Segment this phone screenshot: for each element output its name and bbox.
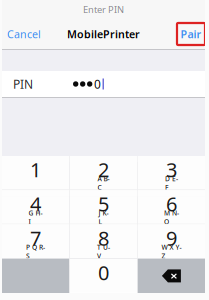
staticText: MNO [164,208,179,226]
button[interactable]: Delete [138,259,205,293]
staticText: GHI [29,208,43,226]
button[interactable]: Cancel [2,19,62,49]
staticText: WXYZ [161,243,181,260]
button[interactable]: 2 [70,156,137,189]
staticText: 1 [30,156,41,183]
staticText: PIN [13,76,33,92]
staticText: 0 [94,76,101,92]
staticText: PQRS [26,243,45,260]
staticText: 2 [98,156,109,183]
staticText: ABC [97,174,109,192]
button[interactable]: 8 [70,224,137,258]
button[interactable]: 3 [138,156,205,189]
staticText: 5 [98,190,109,217]
staticText: DEF [165,174,178,192]
button[interactable]: 4 [2,190,69,224]
staticText: 9 [166,225,177,251]
staticText: 6 [166,190,177,217]
button[interactable]: 5 [70,190,137,224]
staticText: MobilePrinter [67,27,140,41]
staticText: 7 [30,225,41,251]
staticText: 8 [98,225,109,251]
staticText: Enter PIN [83,3,124,16]
staticText: TUV [97,243,110,260]
button[interactable]: 9 [138,224,205,258]
staticText: Cancel [7,27,41,41]
staticText: JKL [98,208,108,226]
staticText: 4 [30,190,41,217]
staticText: 0 [98,259,109,286]
button[interactable]: 0 [70,259,137,293]
staticText: 3 [166,156,177,183]
staticText: Pair [180,27,201,41]
button[interactable]: 7 [2,224,69,258]
button[interactable]: 6 [138,190,205,224]
button[interactable]: 1 [2,156,69,189]
button[interactable]: Pair [177,19,205,49]
